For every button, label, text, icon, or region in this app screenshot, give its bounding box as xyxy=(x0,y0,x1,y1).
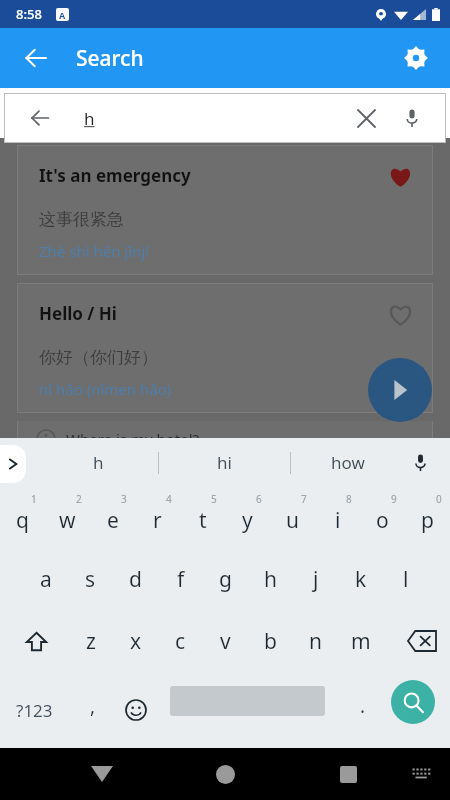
button[interactable]: Expand suggestions xyxy=(0,445,26,483)
button[interactable]: ?123 xyxy=(4,672,64,748)
staticText: nǐ hǎo (nǐmen hǎo) xyxy=(39,379,172,399)
button[interactable]: g xyxy=(203,548,248,610)
button[interactable]: 1 xyxy=(0,486,45,548)
button[interactable]: Favorite xyxy=(380,156,420,196)
button[interactable]: 9 xyxy=(360,486,405,548)
staticText: y xyxy=(242,506,253,535)
staticText: z xyxy=(86,627,96,656)
button[interactable]: Switch keyboard xyxy=(400,753,442,795)
staticText: u xyxy=(286,506,299,535)
staticText: ?123 xyxy=(16,699,53,722)
button[interactable]: Recents xyxy=(324,748,372,800)
staticText: i xyxy=(335,506,341,535)
button[interactable]: Back xyxy=(78,748,126,800)
staticText: 你好（你们好） xyxy=(39,347,158,368)
button[interactable]: It's an emergency xyxy=(18,146,432,274)
button[interactable]: Navigate up xyxy=(14,36,58,80)
button[interactable]: 5 xyxy=(180,486,225,548)
button[interactable]: Settings xyxy=(394,36,438,80)
button[interactable]: j xyxy=(293,548,338,610)
button[interactable]: f xyxy=(158,548,203,610)
button[interactable]: a xyxy=(23,548,68,610)
staticText: 0 xyxy=(436,492,442,506)
button[interactable]: Clear xyxy=(346,98,386,138)
button[interactable]: d xyxy=(113,548,158,610)
staticText: d xyxy=(129,565,142,594)
button[interactable]: Hello / Hi xyxy=(18,284,432,412)
staticText: s xyxy=(85,565,96,594)
button[interactable]: how xyxy=(293,438,403,486)
button[interactable]: Emoji xyxy=(113,672,159,748)
staticText: Search xyxy=(76,44,144,73)
staticText: 2 xyxy=(76,492,82,506)
button[interactable]: h xyxy=(248,548,293,610)
button[interactable]: z xyxy=(68,610,113,672)
staticText: It's an emergency xyxy=(39,164,191,187)
button[interactable]: 7 xyxy=(270,486,315,548)
staticText: l xyxy=(403,565,409,594)
staticText: j xyxy=(313,565,319,594)
button[interactable]: Shift xyxy=(8,610,64,672)
staticText: g xyxy=(219,565,232,594)
button[interactable]: Voice input xyxy=(400,442,440,482)
button[interactable]: 0 xyxy=(405,486,450,548)
button[interactable]: Voice search xyxy=(392,98,432,138)
button[interactable]: s xyxy=(68,548,113,610)
button[interactable]: Back xyxy=(22,100,58,136)
staticText: q xyxy=(16,506,29,535)
button[interactable]: , xyxy=(70,672,116,748)
staticText: 6 xyxy=(256,492,262,506)
staticText: 7 xyxy=(301,492,307,506)
button[interactable]: k xyxy=(338,548,383,610)
staticText: h xyxy=(84,107,95,130)
button[interactable]: n xyxy=(293,610,338,672)
staticText: e xyxy=(107,506,119,535)
button[interactable]: 3 xyxy=(90,486,135,548)
staticText: a xyxy=(40,565,52,594)
button[interactable]: x xyxy=(113,610,158,672)
staticText: p xyxy=(421,506,434,535)
button[interactable]: 6 xyxy=(225,486,270,548)
staticText: A xyxy=(59,9,66,21)
button[interactable]: Search xyxy=(391,680,435,724)
staticText: 5 xyxy=(211,492,217,506)
button[interactable]: 2 xyxy=(45,486,90,548)
staticText: 1 xyxy=(31,492,37,506)
staticText: m xyxy=(351,627,371,656)
staticText: x xyxy=(130,627,142,656)
button[interactable]: Favorite xyxy=(380,294,420,334)
button[interactable]: b xyxy=(248,610,293,672)
staticText: b xyxy=(264,627,277,656)
staticText: n xyxy=(309,627,322,656)
staticText: f xyxy=(177,565,185,594)
button[interactable]: Play pronunciation xyxy=(368,358,432,422)
button[interactable]: Backspace xyxy=(394,610,450,672)
staticText: , xyxy=(90,693,96,719)
staticText: 9 xyxy=(391,492,397,506)
staticText: w xyxy=(59,506,76,535)
staticText: c xyxy=(175,627,186,656)
button[interactable]: hi xyxy=(169,438,279,486)
button[interactable]: v xyxy=(203,610,248,672)
button[interactable]: 8 xyxy=(315,486,360,548)
button[interactable]: 4 xyxy=(135,486,180,548)
staticText: t xyxy=(199,506,207,535)
staticText: h xyxy=(93,451,104,474)
staticText: v xyxy=(220,627,231,656)
staticText: 这事很紧急 xyxy=(39,209,124,230)
staticText: k xyxy=(355,565,367,594)
staticText: hi xyxy=(217,451,232,474)
staticText: Zhè shì hěn jǐnjí xyxy=(39,241,150,261)
staticText: . xyxy=(360,693,366,719)
button[interactable]: m xyxy=(338,610,383,672)
button[interactable]: l xyxy=(383,548,428,610)
staticText: 3 xyxy=(121,492,127,506)
staticText: o xyxy=(376,506,389,535)
staticText: 8:58 xyxy=(16,5,42,23)
button[interactable]: . xyxy=(340,672,386,748)
staticText: 8 xyxy=(346,492,352,506)
button[interactable]: Home xyxy=(201,750,249,798)
button[interactable]: h xyxy=(43,438,153,486)
button[interactable]: c xyxy=(158,610,203,672)
